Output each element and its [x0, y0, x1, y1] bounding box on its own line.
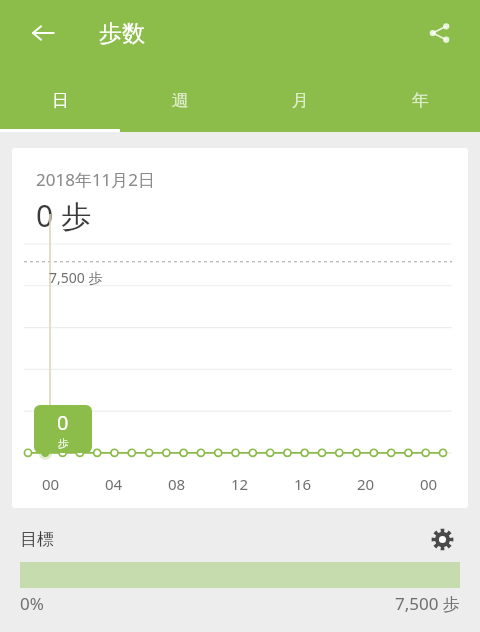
- button[interactable]: 月: [240, 68, 360, 132]
- button[interactable]: Back: [21, 11, 65, 55]
- staticText: 20: [357, 474, 375, 494]
- button[interactable]: 0: [34, 405, 92, 453]
- staticText: 目標: [20, 529, 54, 550]
- button[interactable]: Share: [417, 11, 461, 55]
- staticText: 12: [231, 474, 249, 494]
- staticText: 00: [420, 474, 438, 494]
- staticText: 歩: [58, 436, 69, 450]
- staticText: 日: [52, 90, 69, 111]
- staticText: 0: [57, 409, 69, 436]
- staticText: 年: [412, 90, 429, 111]
- button[interactable]: 日: [0, 68, 120, 132]
- staticText: 7,500 歩: [395, 592, 460, 615]
- staticText: 16: [294, 474, 312, 494]
- staticText: 2018年11月2日: [36, 168, 156, 191]
- staticText: 08: [168, 474, 186, 494]
- staticText: 月: [292, 90, 309, 111]
- staticText: 00: [42, 474, 60, 494]
- staticText: 週: [172, 90, 189, 111]
- staticText: 7,500 歩: [49, 268, 103, 287]
- button[interactable]: 2018年11月2日: [12, 148, 468, 508]
- button[interactable]: 年: [360, 68, 480, 132]
- staticText: 04: [105, 474, 123, 494]
- staticText: 歩数: [99, 19, 145, 48]
- staticText: 0%: [20, 592, 44, 615]
- button[interactable]: Settings: [424, 522, 460, 556]
- button[interactable]: 週: [120, 68, 240, 132]
- staticText: 0 歩: [36, 195, 91, 236]
